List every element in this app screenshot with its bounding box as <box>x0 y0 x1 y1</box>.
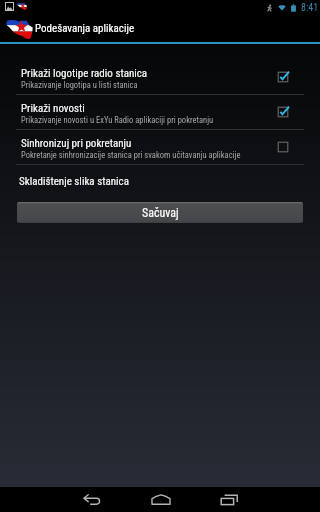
staticText: Pokretanje sinhronizacije stanica pri sv… <box>21 150 241 160</box>
button[interactable]: Home <box>137 487 185 512</box>
button[interactable]: Prikaži logotipe radio stanica <box>0 60 320 94</box>
staticText: Prikazivanje novosti u ExYu Radio aplika… <box>21 115 214 125</box>
staticText: Prikazivanje logotipa u listi stanica <box>21 80 138 90</box>
button[interactable]: Sinhronizuj pri pokretanju <box>0 130 320 164</box>
staticText: Sinhronizuj pri pokretanju <box>21 137 132 150</box>
staticText: Sačuvaj <box>142 206 179 220</box>
staticText: Prikaži novosti <box>21 102 85 115</box>
staticText: Skladištenje slika stanica <box>19 175 129 188</box>
staticText: 8:41 <box>301 2 319 14</box>
staticText: Prikaži logotipe radio stanica <box>21 67 148 80</box>
button[interactable]: Recent apps <box>206 487 254 512</box>
button[interactable]: Podešavanja aplikacije <box>0 18 320 42</box>
button[interactable]: Sačuvaj <box>17 202 303 223</box>
button[interactable]: Prikaži novosti <box>0 95 320 129</box>
staticText: Podešavanja aplikacije <box>35 22 135 35</box>
button[interactable]: Back <box>68 487 116 512</box>
